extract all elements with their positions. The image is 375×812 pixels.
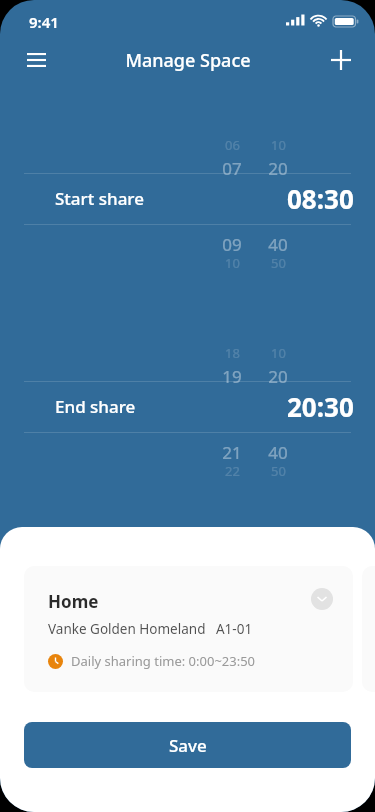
staticText: Save [169,734,207,757]
staticText: Manage Space [125,48,251,73]
staticText: Vanke Golden Homeland A1-01 [48,620,253,638]
staticText: 08:30 [287,181,354,216]
staticText: 19 [222,365,242,388]
staticText: Daily sharing time: 0:00~23:50 [71,652,256,670]
staticText: 09 [222,233,242,256]
staticText: 10 [271,344,286,362]
staticText: 40 [268,441,288,464]
button[interactable]: Home [24,566,353,692]
staticText: 50 [271,254,286,272]
staticText: 06 [225,136,240,154]
button[interactable]: Menu [14,38,58,82]
staticText: 10 [271,136,286,154]
button[interactable]: Collapse [311,588,333,610]
staticText: 18 [225,344,240,362]
staticText: 20:30 [287,389,354,424]
staticText: 22 [225,462,240,480]
staticText: 21 [222,441,242,464]
staticText: 9:41 [29,12,59,32]
button[interactable]: Add [319,38,363,82]
staticText: 20 [268,365,288,388]
button[interactable]: Start share [0,173,375,224]
staticText: Home [48,590,99,613]
staticText: End share [55,395,136,418]
staticText: Start share [55,187,144,210]
staticText: 07 [222,157,242,180]
staticText: 20 [268,157,288,180]
button[interactable]: End share [0,381,375,432]
staticText: 40 [268,233,288,256]
staticText: 50 [271,462,286,480]
staticText: 10 [225,254,240,272]
button[interactable]: Save [24,722,351,768]
